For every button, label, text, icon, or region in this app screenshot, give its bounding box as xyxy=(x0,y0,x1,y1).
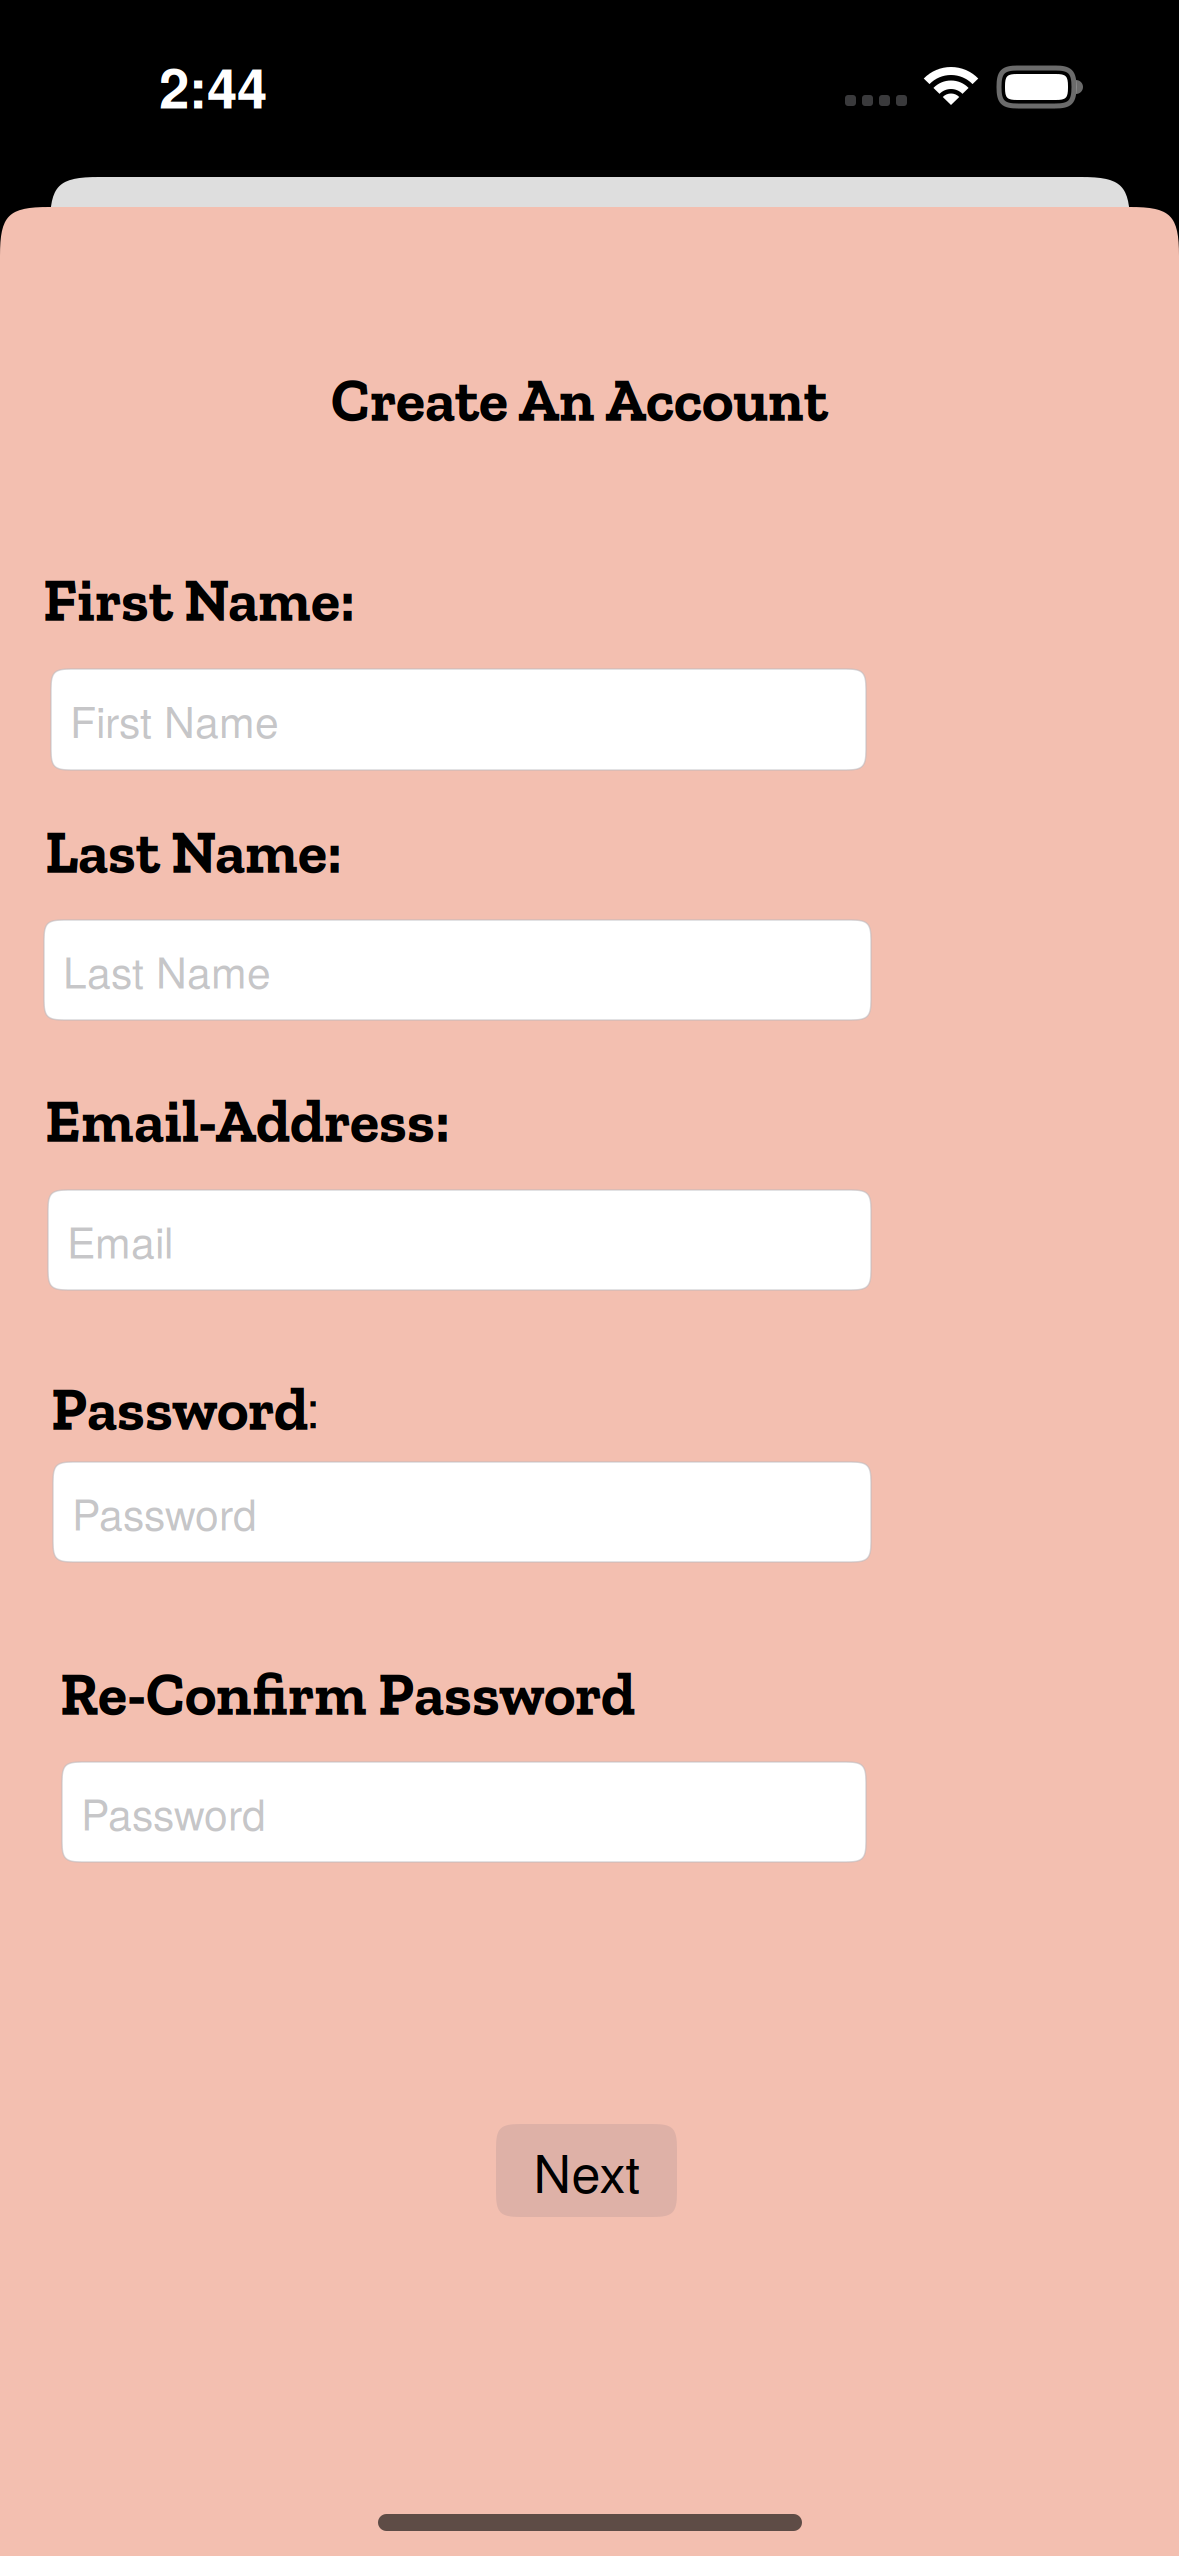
staticText: First Name xyxy=(70,689,279,750)
staticText: Create An Account xyxy=(331,364,828,436)
staticText: 2:44 xyxy=(159,47,267,125)
staticText: Email xyxy=(67,1209,173,1271)
staticText: Last Name xyxy=(63,939,271,1001)
staticText: First Name: xyxy=(43,564,355,636)
button[interactable]: First Name xyxy=(51,669,866,770)
staticText: Password xyxy=(81,1781,266,1843)
staticText: Last Name: xyxy=(45,816,342,888)
staticText: Re-Confirm Password xyxy=(60,1658,635,1730)
button[interactable]: Last Name xyxy=(44,920,871,1020)
staticText: : xyxy=(306,1370,320,1443)
button[interactable]: Password xyxy=(53,1462,871,1562)
button[interactable]: Email xyxy=(48,1190,871,1290)
staticText: Email-Address: xyxy=(45,1085,450,1157)
staticText: Next xyxy=(533,2133,639,2208)
staticText: Password xyxy=(51,1373,308,1445)
staticText: Password xyxy=(72,1481,257,1543)
button[interactable]: Next xyxy=(496,2124,677,2217)
button[interactable]: Password xyxy=(62,1762,866,1862)
